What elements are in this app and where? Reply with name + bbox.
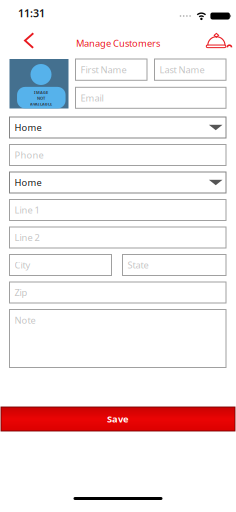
staticText: AVAILABLE <box>30 101 52 107</box>
staticText: Note <box>14 314 35 326</box>
staticText: Line 1 <box>14 204 39 216</box>
staticText: 11:31 <box>18 6 45 20</box>
button[interactable]: IMAGE <box>9 59 68 108</box>
staticText: Last Name <box>159 63 204 76</box>
button[interactable]: Line 1 <box>9 199 226 220</box>
button[interactable] <box>206 33 232 48</box>
staticText: Manage Customers <box>76 37 160 49</box>
button[interactable]: Save <box>1 407 235 431</box>
staticText: Home <box>14 121 41 134</box>
button[interactable]: State <box>122 254 226 275</box>
staticText: City <box>14 259 30 271</box>
staticText: First Name <box>80 63 126 76</box>
staticText: IMAGE <box>34 90 48 95</box>
staticText: Zip <box>14 286 27 299</box>
button[interactable]: Line 2 <box>9 227 226 248</box>
staticText: Line 2 <box>14 231 39 244</box>
button[interactable]: Last Name <box>154 59 226 80</box>
staticText: Home <box>14 176 41 189</box>
button[interactable]: First Name <box>75 59 147 80</box>
staticText: NOT <box>37 95 45 101</box>
button[interactable]: Note <box>9 309 226 367</box>
staticText: Email <box>80 92 103 104</box>
button[interactable] <box>20 28 38 53</box>
button[interactable]: Phone <box>9 144 226 165</box>
staticText: Save <box>107 413 129 425</box>
button[interactable]: Email <box>75 87 226 108</box>
button[interactable]: Home <box>9 172 226 193</box>
staticText: Phone <box>14 149 43 161</box>
button[interactable]: Home <box>9 117 226 138</box>
button[interactable]: Zip <box>9 282 226 303</box>
button[interactable]: City <box>9 254 111 275</box>
staticText: State <box>127 259 148 271</box>
